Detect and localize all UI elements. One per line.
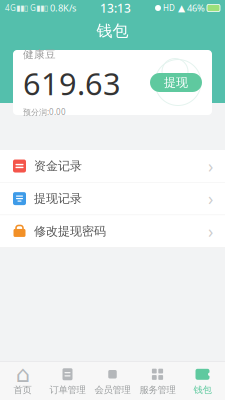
- staticText: 订单管理: [49, 384, 85, 396]
- staticText: 服务管理: [139, 384, 175, 396]
- staticText: 0.8K/s: [48, 2, 76, 14]
- button[interactable]: 会员管理: [90, 362, 135, 400]
- staticText: 修改提现密码: [34, 224, 106, 238]
- button[interactable]: 订单管理: [45, 362, 90, 400]
- staticText: 4G: [5, 3, 16, 13]
- staticText: 619.63: [23, 63, 121, 104]
- button[interactable]: 提现记录: [0, 183, 225, 215]
- staticText: 13:13: [100, 0, 131, 16]
- button[interactable]: 钱包: [180, 362, 225, 400]
- staticText: 钱包: [96, 21, 128, 41]
- staticText: G: [28, 3, 36, 13]
- staticText: 会员管理: [94, 384, 130, 396]
- staticText: 46%: [185, 2, 205, 14]
- staticText: 资金记录: [34, 159, 82, 173]
- staticText: ⌂: [15, 361, 29, 387]
- staticText: ›: [208, 220, 213, 243]
- staticText: 首页: [13, 384, 31, 396]
- staticText: 健康豆: [23, 48, 56, 61]
- button[interactable]: 提现: [150, 73, 202, 92]
- staticText: 预分润:0.00: [23, 107, 66, 117]
- staticText: 提现: [164, 75, 188, 90]
- staticText: HD: [161, 3, 175, 13]
- button[interactable]: 资金记录: [0, 150, 225, 183]
- staticText: ▮▮▯: [16, 3, 28, 13]
- staticText: ›: [208, 187, 213, 210]
- button[interactable]: 服务管理: [135, 362, 180, 400]
- staticText: ▲: [175, 3, 185, 13]
- staticText: 钱包: [193, 384, 211, 396]
- staticText: 提现记录: [34, 191, 82, 206]
- staticText: ▮▮▯: [36, 3, 48, 13]
- button[interactable]: ⌂: [0, 362, 45, 400]
- staticText: ›: [208, 154, 213, 177]
- button[interactable]: 修改提现密码: [0, 215, 225, 248]
